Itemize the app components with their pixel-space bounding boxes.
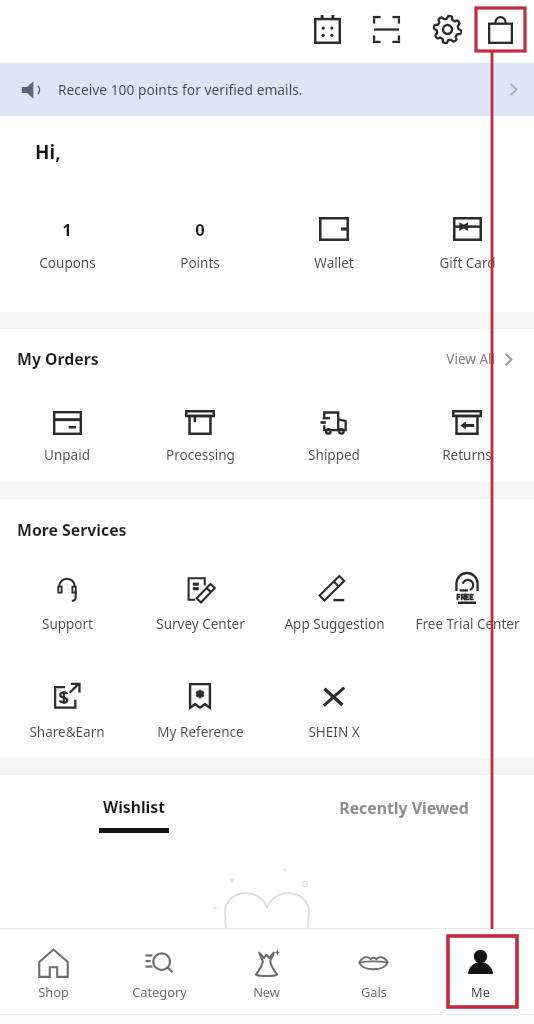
button[interactable]: Gals: [320, 944, 427, 1000]
button[interactable]: Survey Center: [134, 563, 266, 633]
staticText: Share&Earn: [29, 723, 105, 741]
button[interactable]: Shopping bag: [472, 2, 528, 56]
staticText: More Services: [17, 519, 127, 541]
button[interactable]: 1: [1, 203, 133, 272]
button[interactable]: Recently Viewed: [314, 797, 494, 827]
button[interactable]: Receive 100 points for verified emails.: [0, 63, 534, 116]
button[interactable]: Wallet: [268, 203, 400, 272]
staticText: Shipped: [308, 446, 360, 464]
staticText: Category: [132, 983, 187, 1000]
staticText: Returns: [442, 446, 492, 464]
button[interactable]: Share&Earn: [1, 668, 133, 739]
staticText: Points: [180, 254, 220, 272]
button[interactable]: New: [213, 944, 320, 1000]
staticText: Free Trial Center: [415, 615, 520, 633]
button[interactable]: My Reference: [134, 668, 266, 739]
staticText: 0: [195, 218, 205, 240]
button[interactable]: Unpaid: [1, 399, 133, 464]
staticText: SHEIN X: [308, 723, 360, 741]
staticText: My Reference: [157, 723, 244, 741]
button[interactable]: Gift Card: [401, 203, 533, 272]
staticText: Support: [42, 615, 93, 633]
staticText: Gals: [361, 983, 387, 1000]
button[interactable]: Processing: [134, 399, 266, 464]
staticText: Recently Viewed: [339, 797, 469, 819]
button[interactable]: Category: [106, 944, 213, 1000]
button[interactable]: Wishlist: [64, 796, 204, 838]
button[interactable]: SHEIN X: [268, 668, 400, 739]
button[interactable]: Returns: [401, 399, 533, 464]
staticText: App Suggestion: [284, 615, 385, 633]
staticText: Processing: [166, 446, 235, 464]
button[interactable]: Settings: [419, 2, 475, 56]
button[interactable]: 0: [134, 203, 266, 272]
staticText: Wishlist: [103, 796, 165, 817]
staticText: Unpaid: [44, 446, 90, 464]
staticText: Receive 100 points for verified emails.: [58, 80, 303, 99]
button[interactable]: Check in: [299, 2, 355, 56]
button[interactable]: My Orders: [17, 347, 517, 371]
staticText: Me: [471, 983, 490, 1000]
button[interactable]: Free Trial Center: [401, 563, 533, 633]
staticText: Gift Card: [439, 254, 496, 272]
button[interactable]: Shipped: [268, 399, 400, 464]
button[interactable]: Scan: [359, 2, 415, 56]
staticText: My Orders: [17, 348, 99, 370]
staticText: Survey Center: [156, 615, 245, 633]
staticText: Wallet: [314, 254, 354, 272]
staticText: Coupons: [39, 254, 96, 272]
button[interactable]: Support: [1, 563, 133, 633]
button[interactable]: App Suggestion: [268, 563, 400, 633]
button[interactable]: Shop: [0, 944, 106, 1000]
button[interactable]: Me: [427, 944, 534, 1000]
staticText: New: [253, 983, 280, 1000]
staticText: 1: [62, 218, 72, 240]
staticText: Shop: [38, 983, 69, 1000]
staticText: View All: [446, 350, 495, 368]
staticText: Hi,: [35, 139, 61, 163]
